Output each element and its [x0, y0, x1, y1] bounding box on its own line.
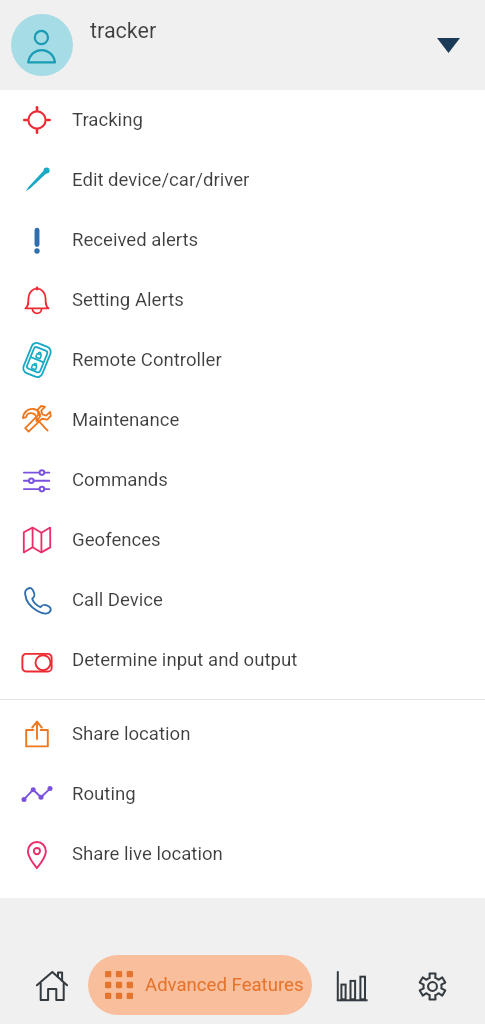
staticText: Setting Alerts: [72, 289, 184, 311]
staticText: Share location: [72, 723, 191, 745]
staticText: Advanced Features: [145, 974, 304, 996]
button[interactable]: Settings: [404, 958, 460, 1014]
button[interactable]: Setting Alerts: [0, 270, 485, 330]
button[interactable]: tracker: [0, 0, 485, 90]
button[interactable]: Geofences: [0, 510, 485, 570]
staticText: Remote Controller: [72, 349, 222, 371]
button[interactable]: Share location: [0, 704, 485, 764]
button[interactable]: Received alerts: [0, 210, 485, 270]
button[interactable]: Share live location: [0, 824, 485, 884]
staticText: Commands: [72, 469, 168, 491]
staticText: Call Device: [72, 589, 163, 611]
staticText: Routing: [72, 783, 136, 805]
staticText: Received alerts: [72, 229, 199, 251]
button[interactable]: Tracking: [0, 90, 485, 150]
button[interactable]: Routing: [0, 764, 485, 824]
button[interactable]: Determine input and output: [0, 630, 485, 690]
button[interactable]: Home: [24, 958, 80, 1014]
staticText: Edit device/car/driver: [72, 169, 250, 191]
staticText: Tracking: [72, 109, 143, 131]
button[interactable]: Call Device: [0, 570, 485, 630]
staticText: tracker: [90, 18, 157, 43]
button[interactable]: Maintenance: [0, 390, 485, 450]
button[interactable]: Edit device/car/driver: [0, 150, 485, 210]
button[interactable]: Commands: [0, 450, 485, 510]
staticText: Determine input and output: [72, 649, 298, 671]
button[interactable]: Remote Controller: [0, 330, 485, 390]
button[interactable]: Expand account list: [426, 23, 470, 67]
staticText: Share live location: [72, 843, 223, 865]
button[interactable]: Reports: [324, 958, 380, 1014]
button[interactable]: Advanced Features: [88, 955, 312, 1015]
staticText: Geofences: [72, 529, 161, 551]
staticText: Maintenance: [72, 409, 180, 431]
